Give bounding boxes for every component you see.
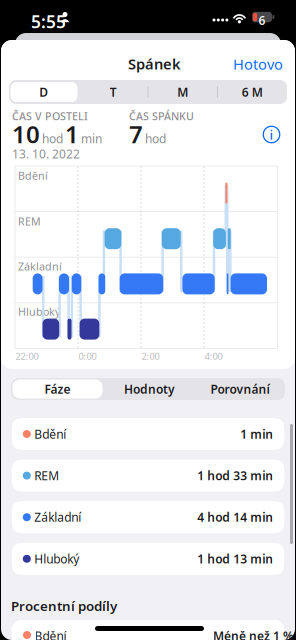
staticText: 4:00 — [204, 350, 222, 362]
staticText: hod — [42, 131, 63, 146]
staticText: 0:00 — [78, 350, 96, 362]
button[interactable]: 6 M — [217, 80, 287, 104]
staticText: Méně než 1 % — [213, 628, 294, 640]
button[interactable]: Informace — [260, 123, 282, 145]
staticText: 22:00 — [15, 350, 38, 362]
staticText: Hodnoty — [124, 381, 175, 397]
button[interactable]: Porovnání — [195, 378, 285, 400]
staticText: M — [177, 84, 188, 100]
staticText: REM — [34, 468, 59, 483]
staticText: min — [81, 131, 102, 146]
staticText: Bdění — [34, 426, 66, 442]
button[interactable]: M — [148, 80, 217, 104]
staticText: 1 — [65, 118, 79, 150]
staticText: 10 — [12, 118, 40, 150]
staticText: 1 hod 13 min — [197, 551, 273, 567]
button[interactable]: D — [9, 80, 78, 104]
button[interactable]: Základní — [12, 501, 284, 533]
staticText: Základní — [18, 259, 62, 274]
staticText: 1 hod 33 min — [197, 468, 273, 483]
staticText: Fáze — [44, 381, 70, 397]
staticText: Hotovo — [233, 54, 283, 74]
staticText: T — [110, 84, 117, 100]
staticText: Hluboký — [34, 551, 79, 567]
button[interactable]: Hotovo — [230, 54, 286, 74]
staticText: D — [39, 84, 48, 100]
staticText: REM — [18, 214, 41, 228]
staticText: 7 — [129, 118, 143, 150]
button[interactable]: Fáze — [11, 378, 104, 400]
button[interactable]: T — [78, 80, 148, 104]
button[interactable]: Hodnoty — [104, 378, 195, 400]
staticText: Hluboký — [18, 305, 60, 319]
button[interactable]: REM — [12, 460, 284, 492]
staticText: i — [269, 126, 273, 143]
staticText: Základní — [34, 509, 81, 525]
button[interactable]: Bdění — [12, 418, 284, 450]
button[interactable]: Hluboký — [12, 543, 284, 575]
staticText: 13. 10. 2022 — [12, 146, 80, 162]
staticText: hod — [145, 131, 166, 146]
staticText: ČAS SPÁNKU — [129, 109, 194, 123]
staticText: 1 min — [240, 426, 273, 442]
staticText: Spánek — [128, 54, 181, 73]
staticText: Bdění — [18, 168, 48, 183]
staticText: 5:55 — [31, 10, 66, 33]
staticText: 6 M — [242, 84, 263, 100]
staticText: 4 hod 14 min — [197, 509, 273, 525]
staticText: Bdění — [34, 628, 66, 640]
staticText: ČAS V POSTELI — [12, 109, 88, 123]
staticText: Procentní podíly — [11, 597, 117, 615]
staticText: Porovnání — [210, 381, 269, 397]
staticText: 2:00 — [141, 350, 159, 362]
staticText: 6 — [259, 12, 266, 28]
